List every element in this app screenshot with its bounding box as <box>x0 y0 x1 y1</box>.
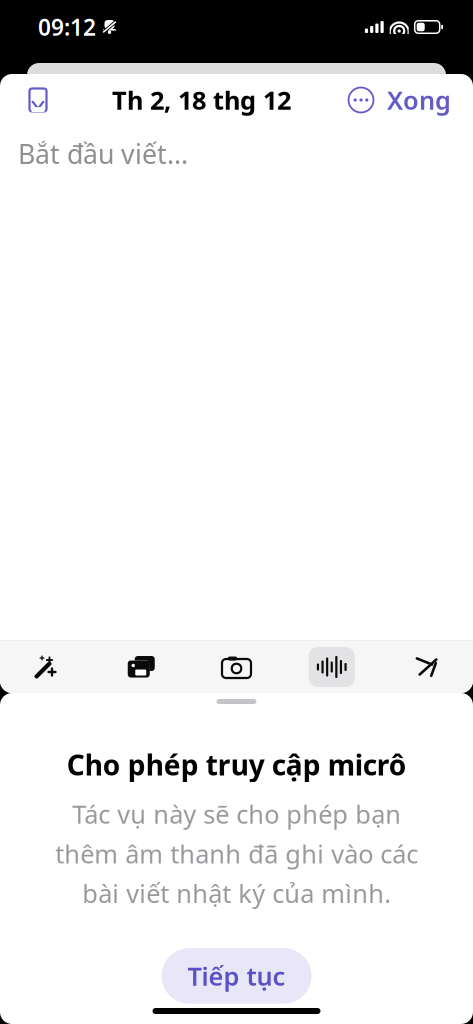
button[interactable]: Đánh dấu <box>16 78 60 122</box>
staticText: Tiếp tục <box>187 959 285 993</box>
button[interactable]: Gợi ý viết <box>12 641 80 693</box>
button[interactable]: Ghi âm <box>298 641 366 693</box>
button[interactable]: Vị trí <box>393 641 461 693</box>
button[interactable]: Ảnh <box>107 641 175 693</box>
button[interactable]: Tiếp tục <box>161 948 311 1004</box>
staticText: 09:12 <box>38 12 96 42</box>
button[interactable]: Máy ảnh <box>202 641 270 693</box>
staticText: Tác vụ này sẽ cho phép bạn thêm âm thanh… <box>55 797 418 910</box>
staticText: Bắt đầu viết... <box>18 136 188 171</box>
staticText: Th 2, 18 thg 12 <box>112 83 291 117</box>
staticText: Xong <box>387 83 451 117</box>
button[interactable]: Thêm tùy chọn <box>343 78 379 122</box>
button[interactable]: Xong <box>379 78 459 122</box>
staticText: Cho phép truy cập micrô <box>66 746 406 783</box>
